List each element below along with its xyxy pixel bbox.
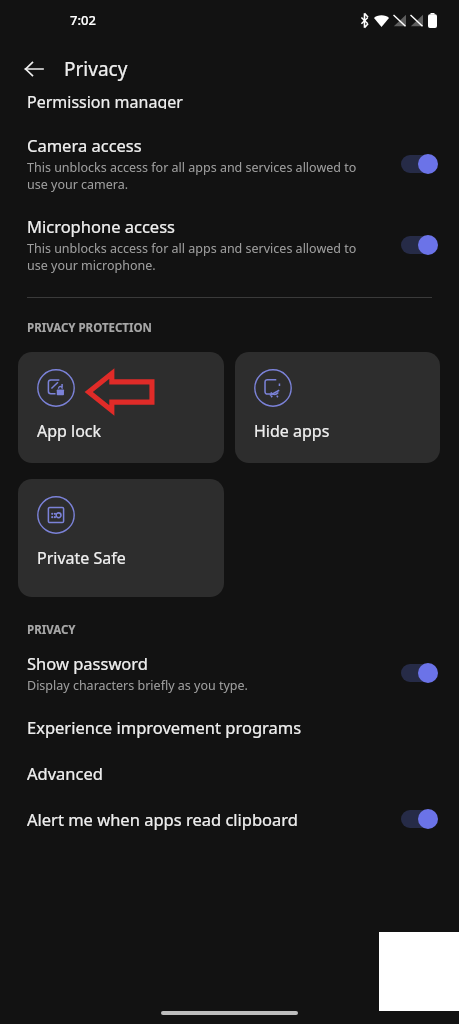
staticText: PRIVACY <box>27 622 76 638</box>
button[interactable]: Back <box>14 49 54 89</box>
staticText: Permission manager <box>27 91 183 109</box>
staticText: This unblocks access for all apps and se… <box>27 159 377 193</box>
staticText: Hide apps <box>254 420 330 442</box>
staticText: Display characters briefly as you type. <box>27 677 248 694</box>
button[interactable]: Advanced <box>0 762 459 784</box>
staticText: 7:02 <box>70 11 96 29</box>
button[interactable]: Hide apps <box>235 352 440 463</box>
button[interactable]: Alert me when apps read clipboard <box>0 808 459 830</box>
button[interactable]: Microphone access <box>0 215 459 274</box>
staticText: Show password <box>27 652 148 674</box>
button[interactable]: App lock <box>18 352 224 463</box>
button[interactable]: Private Safe <box>18 479 224 597</box>
button[interactable]: Camera access <box>0 134 459 193</box>
staticText: Microphone access <box>27 215 175 237</box>
button[interactable]: Toggle <box>401 153 439 175</box>
button[interactable]: Show password <box>0 652 459 694</box>
button[interactable]: Toggle <box>401 662 439 684</box>
staticText: Privacy <box>64 56 128 82</box>
button[interactable]: Permission manager <box>0 98 459 116</box>
button[interactable]: Toggle <box>401 808 439 830</box>
staticText: Advanced <box>27 762 103 784</box>
button[interactable]: Toggle <box>401 234 439 256</box>
staticText: Private Safe <box>37 547 126 569</box>
button[interactable]: Experience improvement programs <box>0 716 459 738</box>
staticText: Alert me when apps read clipboard <box>27 808 298 830</box>
staticText: This unblocks access for all apps and se… <box>27 240 377 274</box>
staticText: PRIVACY PROTECTION <box>27 320 152 336</box>
staticText: Experience improvement programs <box>27 716 302 738</box>
staticText: App lock <box>37 420 102 442</box>
staticText: Camera access <box>27 134 142 156</box>
